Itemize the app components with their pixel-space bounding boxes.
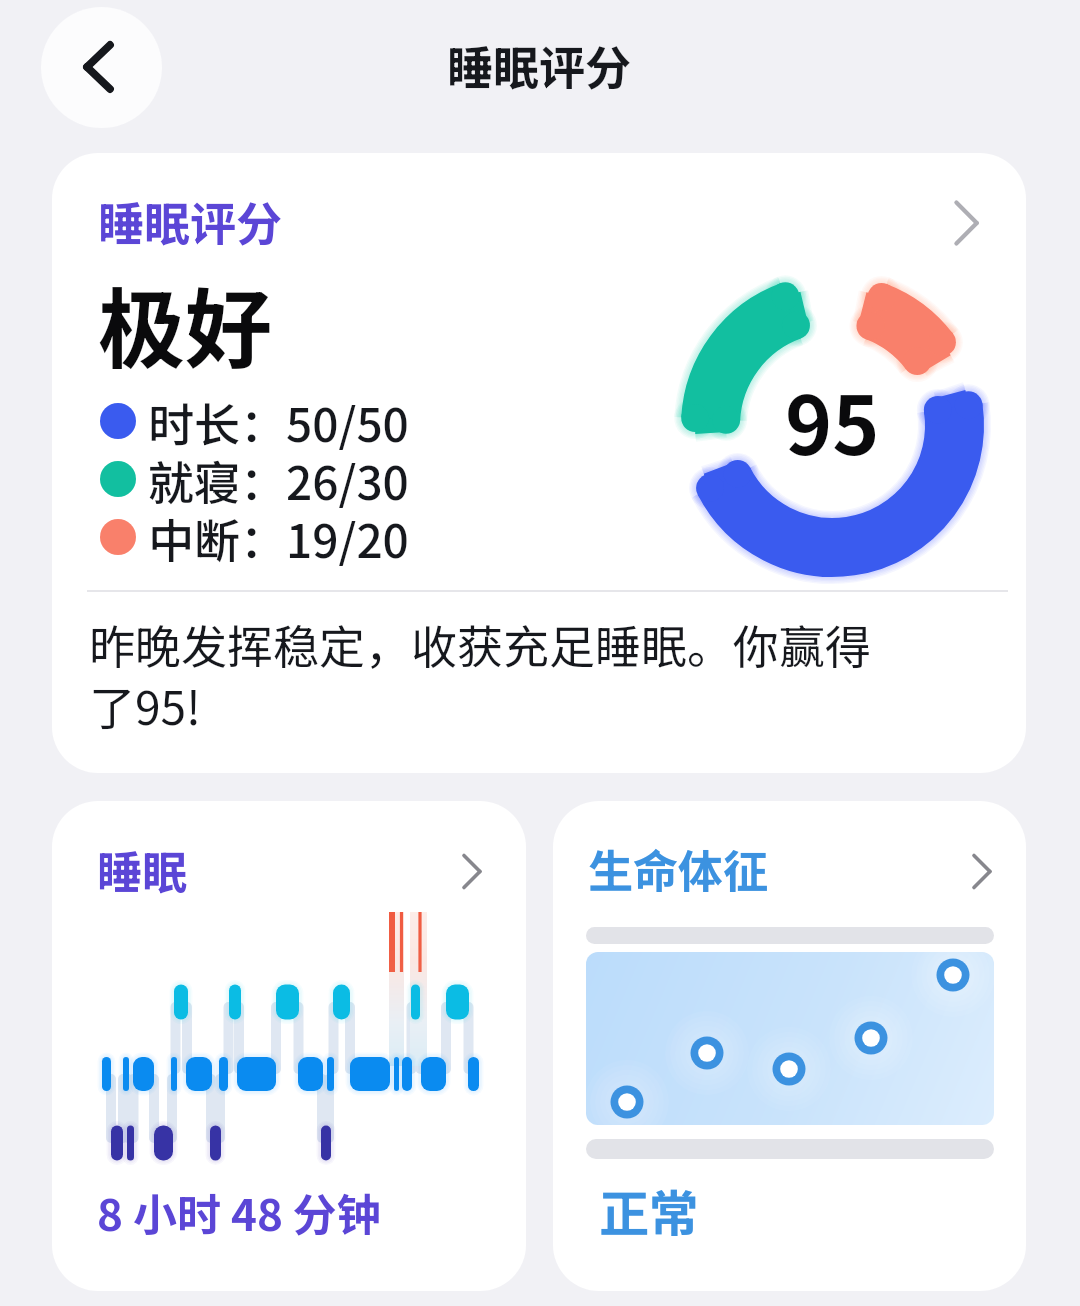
button[interactable]: Open vitals details (958, 848, 1005, 895)
staticText: 昨晚发挥稳定，收获充足睡眠。你赢得 了95! (89, 611, 871, 738)
staticText: 时长：50/50 (148, 389, 409, 456)
staticText: 睡眠评分 (447, 32, 631, 99)
staticText: 极好 (98, 260, 272, 386)
staticText: 睡眠评分 (98, 188, 282, 255)
staticText: 正常 (599, 1174, 699, 1246)
staticText: 就寝：26/30 (148, 447, 409, 514)
button[interactable]: Open sleep details (448, 848, 495, 895)
button[interactable]: 睡眠评分 (52, 153, 1026, 773)
button[interactable]: 生命体征 (553, 801, 1026, 1291)
button[interactable]: Back (41, 7, 162, 128)
staticText: 生命体征 (588, 836, 769, 901)
staticText: 睡眠 (97, 837, 188, 902)
staticText: 8 小时 48 分钟 (97, 1180, 381, 1244)
staticText: 中断：19/20 (148, 505, 409, 572)
button[interactable]: 睡眠 (52, 801, 526, 1291)
staticText: 95 (785, 362, 880, 478)
button[interactable]: Open sleep score details (936, 193, 996, 253)
